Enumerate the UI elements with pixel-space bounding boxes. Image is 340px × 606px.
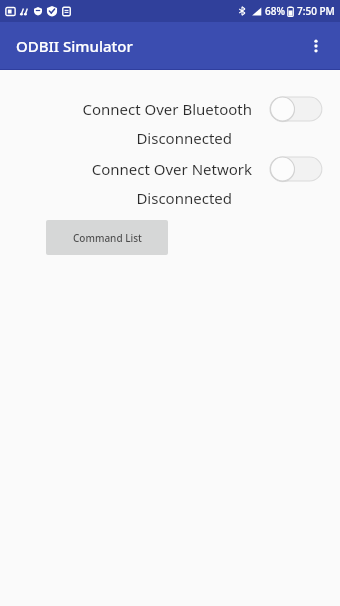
staticText: 7:50 PM	[297, 4, 335, 18]
staticText: 68%	[265, 4, 285, 18]
button[interactable]: Toggle connection	[270, 94, 324, 124]
button[interactable]: Connect Over Bluetooth	[0, 94, 340, 124]
staticText: Command List	[73, 231, 142, 245]
staticText: ODBII Simulator	[16, 36, 133, 56]
staticText: Disconnected	[0, 128, 232, 148]
staticText: Connect Over Network	[16, 159, 252, 179]
staticText: Connect Over Bluetooth	[16, 99, 252, 119]
button[interactable]: Connect Over Network	[0, 154, 340, 184]
button[interactable]: More options	[298, 28, 334, 64]
button[interactable]: Command List	[46, 220, 168, 255]
staticText: Disconnected	[0, 188, 232, 208]
button[interactable]: Toggle connection	[270, 154, 324, 184]
